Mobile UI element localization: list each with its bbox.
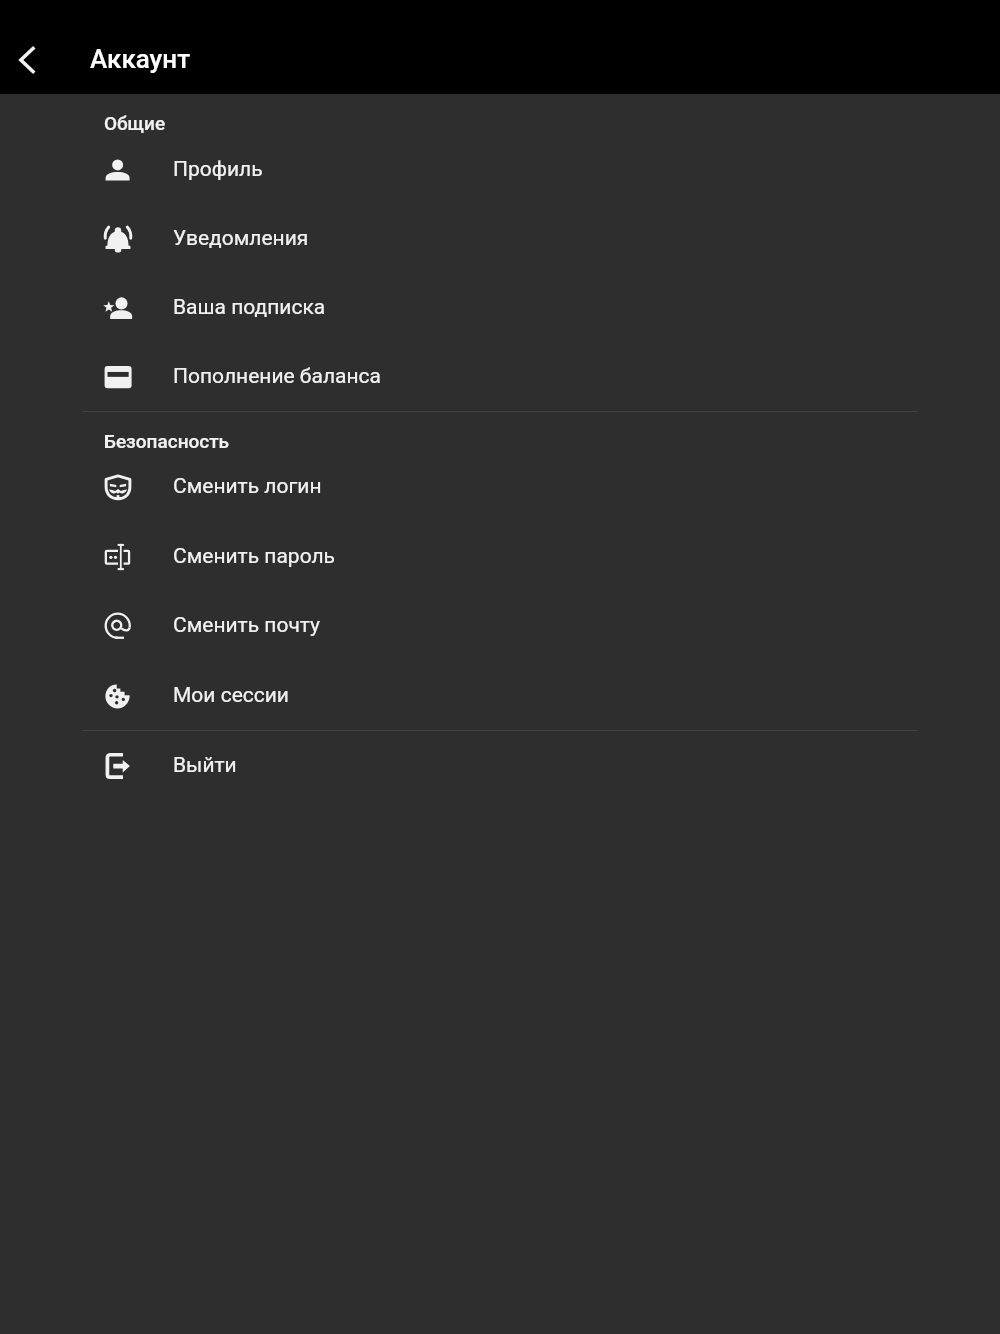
button[interactable]: Сменить логин [0,452,1000,521]
button[interactable]: Выйти [0,731,1000,800]
button[interactable]: Уведомления [0,204,1000,273]
staticText: Пополнение баланса [173,364,381,389]
staticText: Безопасность [104,430,230,452]
button[interactable]: Ваша подписка [0,273,1000,342]
staticText: Аккаунт [90,44,191,74]
button[interactable]: Сменить почту [0,591,1000,660]
staticText: Сменить почту [173,613,320,638]
button[interactable]: Back [2,35,51,84]
staticText: Мои сессии [173,683,289,708]
button[interactable]: Пополнение баланса [0,342,1000,411]
button[interactable]: Профиль [0,135,1000,204]
staticText: Общие [104,112,166,134]
staticText: Сменить логин [173,474,322,499]
staticText: Ваша подписка [173,295,326,320]
staticText: Профиль [173,157,263,182]
button[interactable]: Мои сессии [0,661,1000,730]
staticText: Уведомления [173,226,309,251]
staticText: Выйти [173,753,237,778]
staticText: Сменить пароль [173,544,336,569]
button[interactable]: Сменить пароль [0,522,1000,591]
